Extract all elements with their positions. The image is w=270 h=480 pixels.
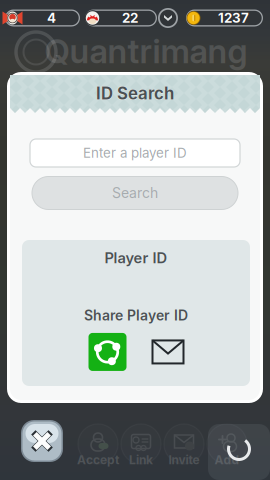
button[interactable]: Share Player ID by mail bbox=[152, 340, 183, 363]
staticText: ID Search bbox=[96, 83, 174, 104]
button[interactable]: Add bbox=[205, 418, 248, 470]
staticText: Player ID bbox=[104, 249, 167, 267]
staticText: Invite bbox=[168, 453, 199, 467]
staticText: Search bbox=[112, 184, 158, 201]
staticText: ID Search bbox=[96, 84, 174, 104]
button[interactable]: Share Player ID in social app bbox=[88, 333, 126, 371]
staticText: 1237 bbox=[218, 10, 249, 26]
button[interactable]: Invite bbox=[162, 418, 205, 470]
button[interactable]: More bbox=[158, 8, 178, 28]
staticText: Link bbox=[129, 453, 153, 467]
staticText: ID Search bbox=[96, 83, 174, 103]
button[interactable]: Link bbox=[119, 418, 162, 470]
staticText: Enter a player ID bbox=[83, 145, 187, 161]
button[interactable]: Close bbox=[21, 420, 63, 462]
staticText: 22 bbox=[122, 10, 138, 26]
staticText: 4 bbox=[47, 10, 56, 26]
button[interactable]: Search bbox=[32, 176, 238, 209]
button[interactable]: 1237 bbox=[186, 9, 263, 26]
staticText: Accept bbox=[77, 453, 119, 467]
staticText: Share Player ID bbox=[84, 307, 188, 324]
staticText: Quantrimang bbox=[44, 31, 247, 71]
staticText: Add bbox=[214, 453, 239, 467]
button[interactable]: 22 bbox=[85, 9, 157, 26]
button[interactable]: Accept bbox=[76, 418, 119, 470]
button[interactable]: 4 bbox=[5, 9, 80, 26]
